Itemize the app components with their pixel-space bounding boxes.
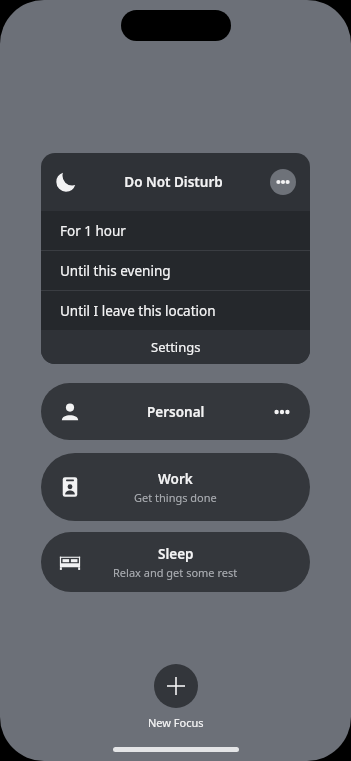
staticText: Until this evening xyxy=(60,262,171,280)
button[interactable]: Work xyxy=(41,453,310,521)
button[interactable]: Do Not Disturb xyxy=(41,153,310,211)
staticText: For 1 hour xyxy=(60,222,126,240)
button[interactable]: Until I leave this location xyxy=(41,291,310,330)
button[interactable]: More options xyxy=(270,400,294,424)
staticText: Do Not Disturb xyxy=(77,173,270,191)
staticText: Sleep xyxy=(158,545,194,563)
button[interactable]: Until this evening xyxy=(41,251,310,290)
staticText: Settings xyxy=(151,338,201,356)
button[interactable]: Settings xyxy=(41,330,310,364)
button[interactable]: More options xyxy=(270,169,296,195)
staticText: Personal xyxy=(147,403,205,421)
staticText: Relax and get some rest xyxy=(113,565,238,580)
button[interactable]: For 1 hour xyxy=(41,211,310,250)
staticText: Get things done xyxy=(134,490,217,505)
staticText: Work xyxy=(158,470,193,488)
button[interactable]: New Focus xyxy=(148,715,204,730)
button[interactable]: Personal xyxy=(41,383,310,440)
button[interactable]: Sleep xyxy=(41,532,310,592)
button[interactable]: New Focus xyxy=(154,664,198,708)
staticText: Until I leave this location xyxy=(60,302,216,320)
